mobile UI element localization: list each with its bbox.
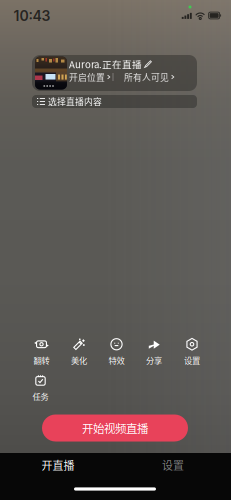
staticText: 开直播 [41, 457, 74, 473]
staticText: 所有人可见 [124, 71, 169, 83]
staticText: 任务 [32, 390, 48, 402]
staticText: 特效 [108, 354, 124, 366]
staticText: 设置 [184, 354, 200, 366]
button[interactable]: 翻转 [24, 339, 58, 364]
staticText: 开始视频直播 [82, 420, 148, 436]
button[interactable]: 分享 [137, 339, 171, 364]
button[interactable]: 开始视频直播 [42, 414, 188, 441]
button[interactable]: 选择直播内容 [32, 95, 197, 108]
button[interactable]: 设置 [118, 450, 228, 480]
button[interactable]: 特效 [99, 339, 133, 364]
staticText: 设置 [162, 457, 184, 473]
button[interactable]: 设置 [175, 339, 209, 364]
staticText: 美化 [71, 354, 87, 366]
staticText: 选择直播内容 [48, 95, 102, 108]
button[interactable]: 美化 [62, 339, 96, 364]
button[interactable]: 开启位置 [69, 71, 110, 82]
button[interactable]: Aurora.正在直播 [32, 55, 197, 91]
staticText: 翻转 [33, 354, 49, 366]
button[interactable]: 所有人可见 [124, 71, 174, 82]
staticText: 10:43 [13, 7, 50, 24]
staticText: 开启位置 [69, 71, 105, 83]
button[interactable]: 任务 [23, 375, 57, 400]
staticText: Aurora.正在直播 [69, 57, 142, 71]
staticText: 分享 [146, 354, 162, 366]
button[interactable]: 开直播 [3, 450, 113, 480]
